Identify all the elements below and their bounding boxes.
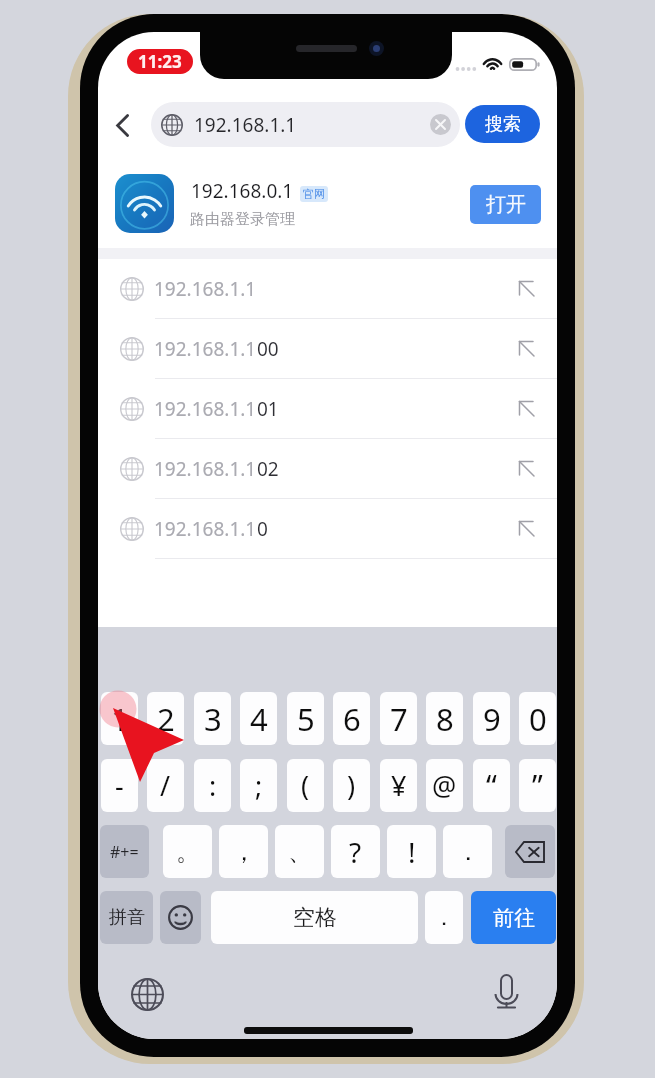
button[interactable]: 192.168.1.1 bbox=[98, 499, 557, 559]
button[interactable]: 。 bbox=[163, 825, 212, 878]
button[interactable]: 拼音 bbox=[100, 891, 153, 944]
button[interactable]: Use suggestion bbox=[511, 393, 543, 425]
button[interactable]: 1 bbox=[101, 692, 138, 745]
button[interactable]: 192.168.1.1 bbox=[98, 319, 557, 379]
staticText: 192.168.1.1 bbox=[194, 112, 297, 138]
staticText: ! bbox=[408, 833, 416, 871]
button[interactable]: ． bbox=[425, 891, 463, 944]
button[interactable]: Use suggestion bbox=[511, 273, 543, 305]
staticText: 路由器登录管理 bbox=[190, 210, 295, 229]
staticText: ． bbox=[456, 837, 480, 867]
staticText: 、 bbox=[288, 837, 312, 867]
button[interactable]: 192.168.0.1 bbox=[98, 167, 557, 245]
staticText: #+= bbox=[110, 841, 139, 863]
button[interactable]: Use suggestion bbox=[511, 453, 543, 485]
button[interactable]: ． bbox=[443, 825, 492, 878]
button[interactable]: ! bbox=[387, 825, 436, 878]
button[interactable]: Emoji bbox=[160, 891, 201, 944]
staticText: 6 bbox=[343, 698, 361, 740]
button[interactable]: 搜索 bbox=[465, 105, 540, 143]
button[interactable]: 7 bbox=[380, 692, 417, 745]
button[interactable]: Clear text bbox=[430, 114, 451, 135]
button[interactable]: Use suggestion bbox=[511, 513, 543, 545]
staticText: 192.168.1.1 bbox=[154, 516, 257, 542]
staticText: ( bbox=[301, 767, 310, 804]
staticText: 拼音 bbox=[109, 906, 145, 929]
button[interactable]: Symbols bbox=[100, 825, 149, 878]
staticText: 搜索 bbox=[485, 113, 521, 136]
staticText: 7 bbox=[390, 698, 408, 740]
button[interactable]: 192.168.1.1 bbox=[151, 102, 460, 147]
staticText: : bbox=[209, 767, 217, 804]
button[interactable]: ” bbox=[519, 759, 556, 812]
button[interactable]: ) bbox=[333, 759, 370, 812]
staticText: 11:23 bbox=[138, 50, 182, 73]
button[interactable]: 192.168.1.1 bbox=[98, 379, 557, 439]
button[interactable]: 0 bbox=[519, 692, 556, 745]
staticText: 02 bbox=[257, 456, 279, 482]
button[interactable]: Use suggestion bbox=[511, 333, 543, 365]
button[interactable]: 192.168.1.1 bbox=[98, 439, 557, 499]
staticText: 4 bbox=[250, 698, 268, 740]
button[interactable]: 192.168.1.1 bbox=[98, 259, 557, 319]
staticText: 192.168.1.1 bbox=[154, 336, 257, 362]
staticText: “ bbox=[486, 765, 497, 806]
staticText: 192.168.1.1 bbox=[154, 456, 257, 482]
button[interactable]: 前往 bbox=[471, 891, 556, 944]
button[interactable]: ? bbox=[331, 825, 380, 878]
staticText: ， bbox=[232, 837, 256, 867]
button[interactable]: 、 bbox=[275, 825, 324, 878]
button[interactable]: Back bbox=[103, 106, 141, 144]
button[interactable]: 8 bbox=[426, 692, 463, 745]
staticText: @ bbox=[432, 767, 457, 804]
staticText: 0 bbox=[529, 698, 547, 740]
staticText: 00 bbox=[257, 336, 279, 362]
staticText: ) bbox=[347, 767, 356, 804]
staticText: ¥ bbox=[391, 767, 407, 804]
staticText: 192.168.1.1 bbox=[154, 396, 257, 422]
staticText: - bbox=[115, 767, 124, 804]
staticText: 。 bbox=[176, 837, 200, 867]
staticText: 192.168.0.1 bbox=[191, 178, 294, 204]
staticText: 192.168.1.1 bbox=[154, 276, 257, 302]
button[interactable]: Switch keyboard bbox=[131, 978, 164, 1011]
button[interactable]: Backspace bbox=[505, 825, 555, 878]
staticText: 打开 bbox=[486, 192, 526, 217]
button[interactable]: 5 bbox=[287, 692, 324, 745]
button[interactable]: “ bbox=[473, 759, 510, 812]
staticText: 1 bbox=[111, 698, 129, 740]
button[interactable]: / bbox=[147, 759, 184, 812]
button[interactable]: 2 bbox=[147, 692, 184, 745]
button[interactable]: 打开 bbox=[470, 185, 541, 224]
button[interactable]: 9 bbox=[473, 692, 510, 745]
button[interactable]: - bbox=[101, 759, 138, 812]
staticText: ? bbox=[349, 833, 362, 871]
button[interactable]: ， bbox=[219, 825, 268, 878]
staticText: 0 bbox=[257, 516, 268, 542]
staticText: 前往 bbox=[493, 905, 535, 931]
button[interactable]: ; bbox=[240, 759, 277, 812]
button[interactable]: ¥ bbox=[380, 759, 417, 812]
staticText: ; bbox=[255, 767, 263, 804]
staticText: / bbox=[160, 767, 171, 804]
button[interactable]: 4 bbox=[240, 692, 277, 745]
button[interactable]: : bbox=[194, 759, 231, 812]
staticText: ． bbox=[433, 904, 455, 932]
button[interactable]: @ bbox=[426, 759, 463, 812]
staticText: 9 bbox=[483, 698, 501, 740]
staticText: 3 bbox=[204, 698, 222, 740]
staticText: 8 bbox=[436, 698, 454, 740]
button[interactable]: ( bbox=[287, 759, 324, 812]
staticText: 空格 bbox=[293, 904, 337, 932]
staticText: 01 bbox=[257, 396, 279, 422]
button[interactable]: Voice input bbox=[491, 971, 527, 1015]
staticText: 2 bbox=[157, 698, 175, 740]
button[interactable]: 6 bbox=[333, 692, 370, 745]
staticText: 官网 bbox=[303, 187, 325, 201]
button[interactable]: 3 bbox=[194, 692, 231, 745]
staticText: 5 bbox=[297, 698, 315, 740]
button[interactable]: 空格 bbox=[211, 891, 418, 944]
staticText: ” bbox=[532, 765, 543, 806]
